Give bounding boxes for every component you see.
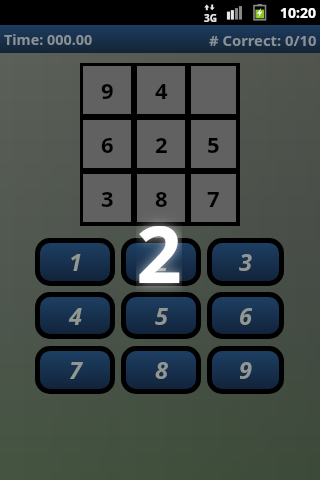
button[interactable]: 9 <box>212 351 279 389</box>
staticText: 3G <box>204 11 217 25</box>
staticText: 4 <box>69 300 82 332</box>
button[interactable]: 6 <box>212 297 279 334</box>
staticText: 8 <box>155 354 168 386</box>
button[interactable]: 4 <box>137 66 185 114</box>
button[interactable]: 7 <box>40 351 110 389</box>
button[interactable]: 6 <box>83 120 131 168</box>
staticText: 7 <box>69 354 82 386</box>
staticText: # Correct: 0/10 <box>209 30 317 50</box>
staticText: 2 <box>155 129 168 159</box>
staticText: 3 <box>239 246 252 278</box>
button[interactable]: 3 <box>83 174 131 222</box>
staticText: 2 <box>136 199 182 299</box>
staticText: 9 <box>101 75 114 105</box>
staticText: 2 <box>136 199 182 299</box>
staticText: 5 <box>155 300 168 332</box>
button[interactable]: 7 <box>191 174 236 222</box>
staticText: Time: 000.00 <box>4 30 93 50</box>
button[interactable]: 9 <box>83 66 131 114</box>
staticText: 2 <box>155 246 168 278</box>
staticText: 3 <box>101 183 114 213</box>
button[interactable]: 2 <box>126 243 196 281</box>
staticText: 6 <box>239 300 252 332</box>
staticText: 2 <box>136 199 182 299</box>
button[interactable]: 2 <box>137 120 185 168</box>
button[interactable]: 8 <box>137 174 185 222</box>
staticText: 9 <box>239 354 252 386</box>
button[interactable]: 5 <box>126 297 196 334</box>
staticText: 7 <box>207 183 220 213</box>
staticText: 5 <box>207 129 220 159</box>
staticText: 1 <box>69 246 82 278</box>
button[interactable]: 4 <box>40 297 110 334</box>
staticText: 4 <box>155 75 168 105</box>
button[interactable]: 5 <box>191 120 236 168</box>
button[interactable]: 8 <box>126 351 196 389</box>
button[interactable]: 3 <box>212 243 279 281</box>
staticText: 10:20 <box>280 3 316 22</box>
button[interactable]: 1 <box>40 243 110 281</box>
staticText: 8 <box>155 183 168 213</box>
staticText: 6 <box>101 129 114 159</box>
